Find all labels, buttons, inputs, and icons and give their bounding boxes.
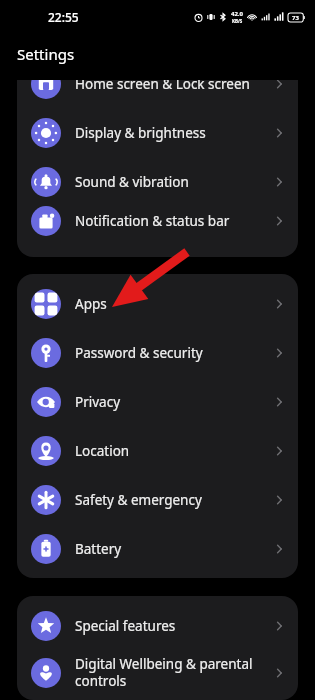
button[interactable]: Apps [17, 279, 298, 328]
staticText: Digital Wellbeing & parental controls [75, 655, 272, 690]
button[interactable]: Sound & vibration [17, 157, 298, 206]
button[interactable]: Privacy [17, 377, 298, 426]
staticText: KB/S [232, 18, 243, 24]
button[interactable]: Home screen & Lock screen [17, 80, 298, 108]
staticText: Battery [75, 540, 272, 558]
button[interactable]: Battery [17, 524, 298, 573]
staticText: Safety & emergency [75, 491, 272, 509]
staticText: Display & brightness [75, 124, 272, 142]
button[interactable]: Display & brightness [17, 108, 298, 157]
staticText: Settings [17, 44, 75, 64]
staticText: Apps [75, 295, 272, 313]
staticText: 22:55 [48, 9, 79, 25]
staticText: 42.0 [231, 10, 243, 18]
button[interactable]: Location [17, 426, 298, 475]
staticText: 73 [292, 14, 299, 22]
button[interactable]: Notification & status bar [17, 206, 298, 236]
staticText: Location [75, 442, 272, 460]
staticText: Notification & status bar [75, 212, 272, 230]
staticText: Password & security [75, 344, 272, 362]
button[interactable]: Safety & emergency [17, 475, 298, 524]
staticText: Sound & vibration [75, 173, 272, 191]
button[interactable]: Password & security [17, 328, 298, 377]
staticText: Special features [75, 617, 272, 635]
staticText: Privacy [75, 393, 272, 411]
button[interactable]: Special features [17, 601, 298, 650]
staticText: Home screen & Lock screen [75, 80, 272, 93]
button[interactable]: Digital Wellbeing & parental controls [17, 650, 298, 695]
